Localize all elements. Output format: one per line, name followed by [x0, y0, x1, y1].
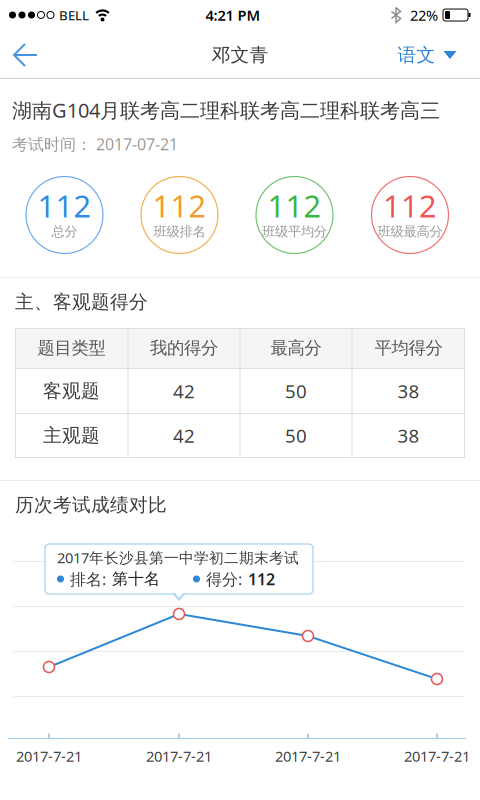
staticText: 4:21 PM: [205, 5, 260, 25]
staticText: 客观题: [43, 379, 100, 402]
staticText: 排名:: [70, 568, 106, 590]
staticText: 112: [37, 185, 91, 226]
staticText: 2017-7-21: [404, 746, 470, 766]
staticText: 2017年长沙县第一中学初二期末考试: [57, 548, 299, 567]
staticText: 38: [397, 379, 419, 403]
staticText: 112: [383, 185, 437, 226]
staticText: 38: [397, 423, 419, 448]
staticText: 最高分: [270, 337, 321, 359]
staticText: 第十名: [112, 569, 160, 589]
staticText: 2017-7-21: [16, 746, 82, 766]
staticText: 112: [248, 568, 275, 590]
staticText: 得分:: [206, 568, 242, 590]
staticText: 42: [173, 423, 195, 448]
staticText: 考试时间： 2017-07-21: [12, 133, 178, 155]
staticText: 主观题: [43, 424, 100, 447]
staticText: BELL: [59, 6, 89, 24]
staticText: 语文: [397, 43, 435, 66]
staticText: 50: [285, 379, 307, 403]
staticText: 22%: [410, 5, 438, 25]
staticText: 平均得分: [374, 337, 442, 359]
staticText: 我的得分: [150, 337, 218, 359]
staticText: 50: [285, 423, 307, 448]
staticText: 主、客观题得分: [15, 290, 148, 313]
staticText: 2017-7-21: [275, 746, 341, 766]
staticText: 班级最高分: [377, 223, 442, 240]
staticText: 班级平均分: [262, 223, 327, 240]
staticText: 2017-7-21: [146, 746, 212, 766]
button[interactable]: Back: [1, 31, 49, 79]
button[interactable]: 语文: [397, 31, 456, 79]
staticText: 总分: [51, 223, 77, 240]
staticText: 112: [267, 185, 321, 226]
staticText: 历次考试成绩对比: [15, 493, 167, 516]
staticText: 湖南G104月联考高二理科联考高二理科联考高三: [12, 97, 440, 123]
staticText: 邓文青: [211, 43, 268, 66]
staticText: 题目类型: [37, 337, 105, 359]
staticText: 42: [173, 379, 195, 403]
staticText: 112: [152, 185, 206, 226]
staticText: 班级排名: [153, 223, 205, 240]
